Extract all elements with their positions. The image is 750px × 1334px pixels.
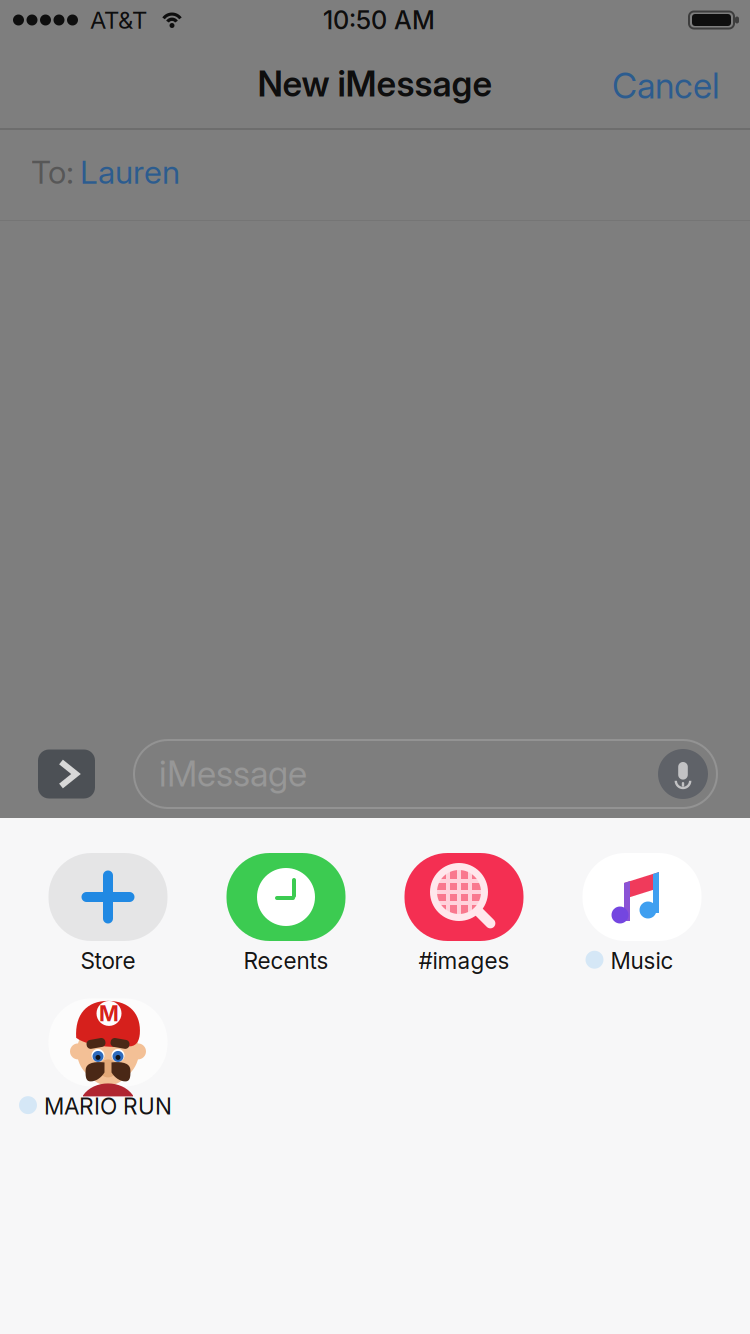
staticText: Lauren — [80, 153, 180, 191]
staticText: To: — [31, 153, 74, 191]
staticText: Recents — [243, 947, 328, 974]
button[interactable]: Music — [553, 853, 731, 974]
button[interactable]: Cancel — [596, 43, 736, 125]
staticText: #images — [418, 947, 509, 974]
staticText: iMessage — [159, 753, 307, 795]
button[interactable]: Dictate — [658, 749, 708, 799]
button[interactable]: App drawer — [38, 749, 95, 798]
staticText: MARIO RUN — [44, 1092, 172, 1120]
staticText: 10:50 AM — [323, 5, 435, 35]
staticText: Music — [610, 947, 673, 974]
staticText: Store — [80, 947, 135, 974]
button[interactable]: #images — [375, 853, 553, 974]
staticText: AT&T — [90, 5, 147, 34]
button[interactable]: Recents — [197, 853, 375, 974]
staticText: New iMessage — [257, 63, 492, 105]
staticText: M — [99, 1000, 119, 1026]
button[interactable]: M — [19, 998, 197, 1120]
button[interactable]: Store — [19, 853, 197, 974]
staticText: Cancel — [612, 65, 720, 107]
